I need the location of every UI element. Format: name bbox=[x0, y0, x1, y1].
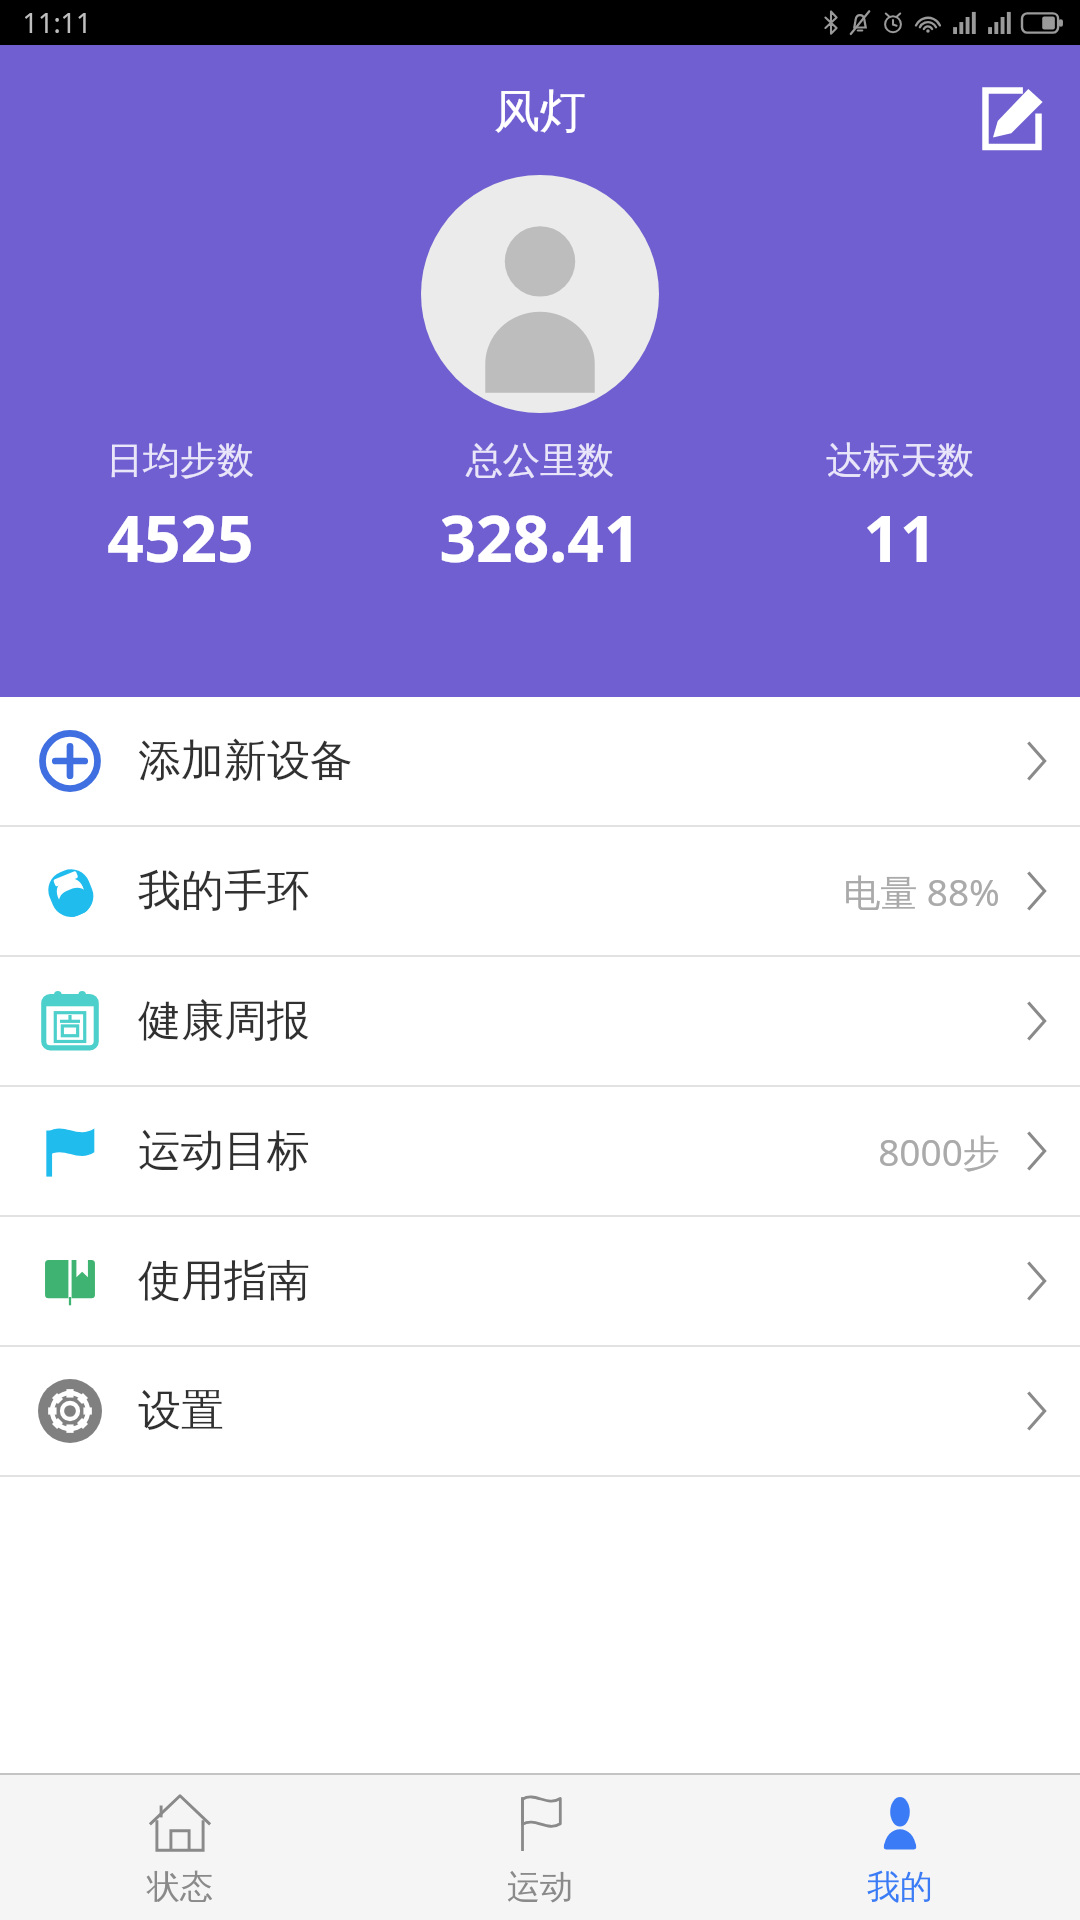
staticText: 我的 bbox=[867, 1866, 933, 1908]
button[interactable]: 状态 bbox=[0, 1775, 360, 1920]
staticText: 电量 88% bbox=[843, 866, 1000, 917]
button[interactable]: 使用指南 bbox=[0, 1217, 1080, 1345]
staticText: 日均步数 bbox=[106, 437, 254, 484]
button[interactable]: 运动目标 bbox=[0, 1087, 1080, 1215]
button[interactable]: Profile avatar bbox=[421, 175, 659, 413]
button[interactable]: 我的手环 bbox=[0, 827, 1080, 955]
staticText: 运动 bbox=[507, 1866, 573, 1908]
staticText: 11 bbox=[863, 494, 937, 581]
staticText: 8000步 bbox=[878, 1126, 1000, 1177]
staticText: 状态 bbox=[147, 1866, 213, 1908]
button[interactable]: 健康周报 bbox=[0, 957, 1080, 1085]
staticText: 运动目标 bbox=[138, 1124, 310, 1178]
staticText: 设置 bbox=[138, 1384, 224, 1438]
button[interactable]: Edit profile bbox=[968, 73, 1056, 161]
staticText: 我的手环 bbox=[138, 864, 310, 918]
button[interactable]: 设置 bbox=[0, 1347, 1080, 1475]
staticText: 健康周报 bbox=[138, 994, 310, 1048]
staticText: 328.41 bbox=[439, 494, 641, 581]
staticText: 总公里数 bbox=[466, 437, 614, 484]
staticText: 添加新设备 bbox=[138, 734, 353, 788]
button[interactable]: 我的 bbox=[720, 1775, 1080, 1920]
staticText: 11:11 bbox=[22, 4, 92, 41]
button[interactable]: 添加新设备 bbox=[0, 697, 1080, 825]
button[interactable]: 运动 bbox=[360, 1775, 720, 1920]
staticText: 达标天数 bbox=[826, 437, 974, 484]
staticText: 风灯 bbox=[494, 83, 586, 141]
staticText: 使用指南 bbox=[138, 1254, 310, 1308]
staticText: 4525 bbox=[107, 494, 254, 581]
